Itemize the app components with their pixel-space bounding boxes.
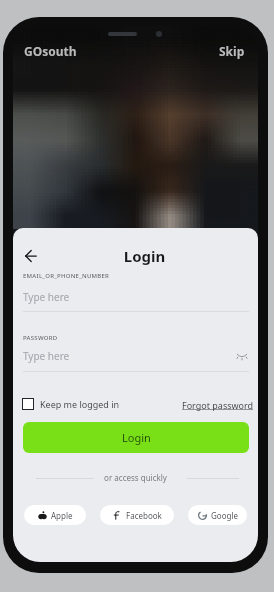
button[interactable]: Facebook bbox=[100, 505, 174, 525]
staticText: or access quickly bbox=[13, 472, 258, 483]
button[interactable]: GOsouth bbox=[24, 43, 77, 59]
staticText: Skip bbox=[219, 43, 245, 59]
button[interactable]: Show password bbox=[234, 347, 250, 363]
staticText: PASSWORD bbox=[23, 334, 58, 342]
button[interactable]: Skip bbox=[219, 43, 245, 59]
staticText: Keep me logged in bbox=[40, 398, 120, 410]
staticText: GOsouth bbox=[24, 43, 77, 59]
staticText: Facebook bbox=[126, 510, 162, 521]
staticText: Type here bbox=[23, 349, 70, 363]
staticText: Login bbox=[22, 246, 258, 266]
staticText: Apple bbox=[51, 510, 73, 521]
staticText: Login bbox=[122, 430, 151, 445]
button[interactable]: Keep me logged in bbox=[22, 398, 120, 410]
staticText: EMAIL_OR_PHONE_NUMBER bbox=[23, 272, 110, 280]
button[interactable]: Back bbox=[21, 246, 41, 266]
button[interactable]: Apple bbox=[24, 505, 86, 525]
button[interactable]: Login bbox=[23, 422, 249, 453]
staticText: Google bbox=[211, 510, 238, 521]
button[interactable]: Google bbox=[188, 505, 247, 525]
staticText: Type here bbox=[23, 290, 70, 304]
button[interactable]: Forgot password bbox=[182, 399, 254, 411]
staticText: Forgot password bbox=[182, 399, 254, 411]
